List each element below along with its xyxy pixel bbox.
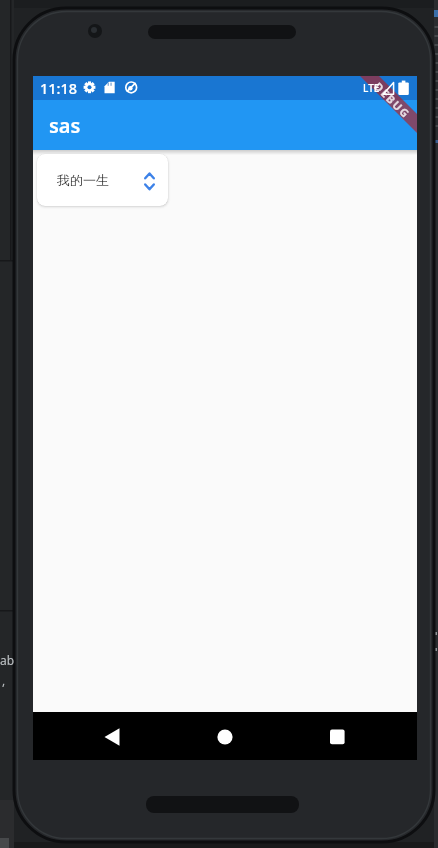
button[interactable]: 我的一生 bbox=[37, 154, 168, 206]
staticText: ab bbox=[0, 652, 15, 668]
staticText: 11:18 bbox=[40, 78, 78, 98]
staticText: LTE bbox=[363, 81, 380, 95]
staticText: , bbox=[2, 672, 6, 688]
staticText: sas bbox=[49, 112, 81, 139]
staticText: DEBUG bbox=[371, 79, 414, 122]
staticText: 我的一生 bbox=[57, 172, 109, 188]
